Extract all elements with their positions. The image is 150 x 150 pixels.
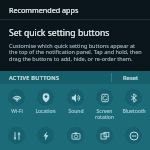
staticText: Reset [123, 74, 139, 82]
staticText: Recommended apps [9, 5, 79, 15]
button[interactable]: Reset [112, 71, 150, 84]
button[interactable]: Mobile data [3, 125, 30, 144]
button[interactable]: Camera [62, 125, 89, 144]
staticText: Screen rotation [95, 108, 114, 121]
button[interactable]: Bluetooth [120, 87, 147, 115]
button[interactable]: Screen rotation [91, 87, 118, 121]
staticText: Bluetooth [122, 108, 146, 115]
staticText: Sound [68, 108, 84, 115]
staticText: Customise which quick setting buttons ap… [9, 42, 143, 63]
staticText: Wi-Fi [11, 108, 23, 115]
staticText: Set quick setting buttons [9, 27, 110, 39]
button[interactable]: Location [32, 87, 59, 115]
button[interactable]: Wi-Fi [3, 87, 30, 115]
button[interactable]: Recommended apps [0, 0, 150, 19]
button[interactable]: Flash [32, 125, 59, 144]
button[interactable]: Do not disturb [120, 125, 147, 144]
button[interactable]: Multi window [91, 125, 118, 144]
staticText: ACTIVE BUTTONS [9, 74, 60, 82]
button[interactable]: Sound [62, 87, 89, 115]
staticText: Location [35, 108, 56, 115]
